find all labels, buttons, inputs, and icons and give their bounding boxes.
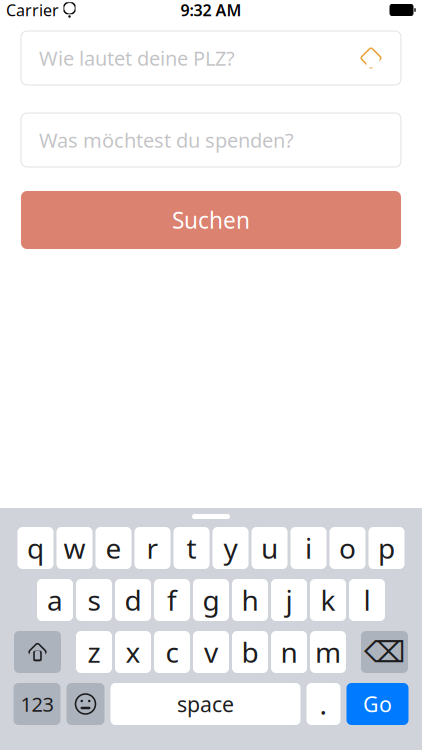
button[interactable]: Suchen — [21, 191, 401, 249]
button[interactable]: Shift — [14, 631, 61, 673]
staticText: Go — [363, 690, 392, 718]
button[interactable]: s — [76, 579, 112, 621]
staticText: ⌫ — [364, 635, 405, 669]
button[interactable]: Go — [346, 683, 408, 725]
button[interactable]: Delete — [361, 631, 408, 673]
staticText: s — [87, 581, 100, 619]
staticText: m — [315, 633, 341, 671]
staticText: 9:32 AM — [180, 0, 241, 21]
button[interactable]: z — [76, 631, 112, 673]
button[interactable]: space — [110, 683, 300, 725]
button[interactable]: v — [193, 631, 229, 673]
staticText: g — [202, 581, 219, 619]
button[interactable]: j — [271, 579, 307, 621]
button[interactable]: g — [193, 579, 229, 621]
button[interactable]: n — [271, 631, 307, 673]
button[interactable]: i — [290, 527, 326, 569]
button[interactable]: w — [56, 527, 92, 569]
staticText: c — [165, 633, 178, 671]
staticText: space — [177, 690, 234, 718]
staticText: t — [186, 529, 196, 567]
button[interactable]: d — [115, 579, 151, 621]
button[interactable]: c — [154, 631, 190, 673]
staticText: k — [320, 581, 335, 619]
button[interactable]: b — [232, 631, 268, 673]
staticText: p — [378, 529, 395, 567]
button[interactable]: t — [173, 527, 209, 569]
button[interactable]: p — [368, 527, 404, 569]
staticText: Carrier — [6, 0, 59, 21]
button[interactable]: q — [17, 527, 53, 569]
staticText: v — [204, 633, 218, 671]
button[interactable]: h — [232, 579, 268, 621]
staticText: q — [27, 529, 44, 567]
staticText: b — [241, 633, 258, 671]
button[interactable]: Wie lautet deine PLZ? — [21, 31, 401, 85]
staticText: r — [146, 529, 158, 567]
staticText: o — [339, 529, 356, 567]
button[interactable]: y — [212, 527, 248, 569]
button[interactable]: f — [154, 579, 190, 621]
button[interactable]: Emoji — [66, 683, 104, 725]
button[interactable]: u — [251, 527, 287, 569]
staticText: u — [261, 529, 278, 567]
staticText: Suchen — [172, 205, 250, 235]
button[interactable]: m — [310, 631, 346, 673]
staticText: 123 — [20, 691, 53, 717]
staticText: e — [105, 529, 121, 567]
button[interactable]: x — [115, 631, 151, 673]
staticText: j — [285, 581, 292, 619]
button[interactable]: r — [134, 527, 170, 569]
staticText: l — [363, 581, 370, 619]
button[interactable]: l — [349, 579, 385, 621]
staticText: y — [223, 529, 237, 567]
staticText: a — [47, 581, 63, 619]
staticText: w — [63, 529, 85, 567]
button[interactable]: 123 — [13, 683, 60, 725]
staticText: i — [305, 529, 312, 567]
staticText: z — [87, 633, 100, 671]
button[interactable]: Was möchtest du spenden? — [21, 113, 401, 167]
staticText: h — [241, 581, 258, 619]
staticText: Wie lautet deine PLZ? — [39, 45, 235, 71]
staticText: d — [124, 581, 141, 619]
staticText: Was möchtest du spenden? — [39, 127, 294, 153]
staticText: . — [319, 685, 327, 723]
button[interactable]: o — [329, 527, 365, 569]
staticText: f — [167, 581, 177, 619]
staticText: x — [125, 633, 140, 671]
button[interactable]: k — [310, 579, 346, 621]
staticText: n — [280, 633, 297, 671]
button[interactable]: a — [37, 579, 73, 621]
button[interactable]: . — [306, 683, 340, 725]
button[interactable]: e — [95, 527, 131, 569]
